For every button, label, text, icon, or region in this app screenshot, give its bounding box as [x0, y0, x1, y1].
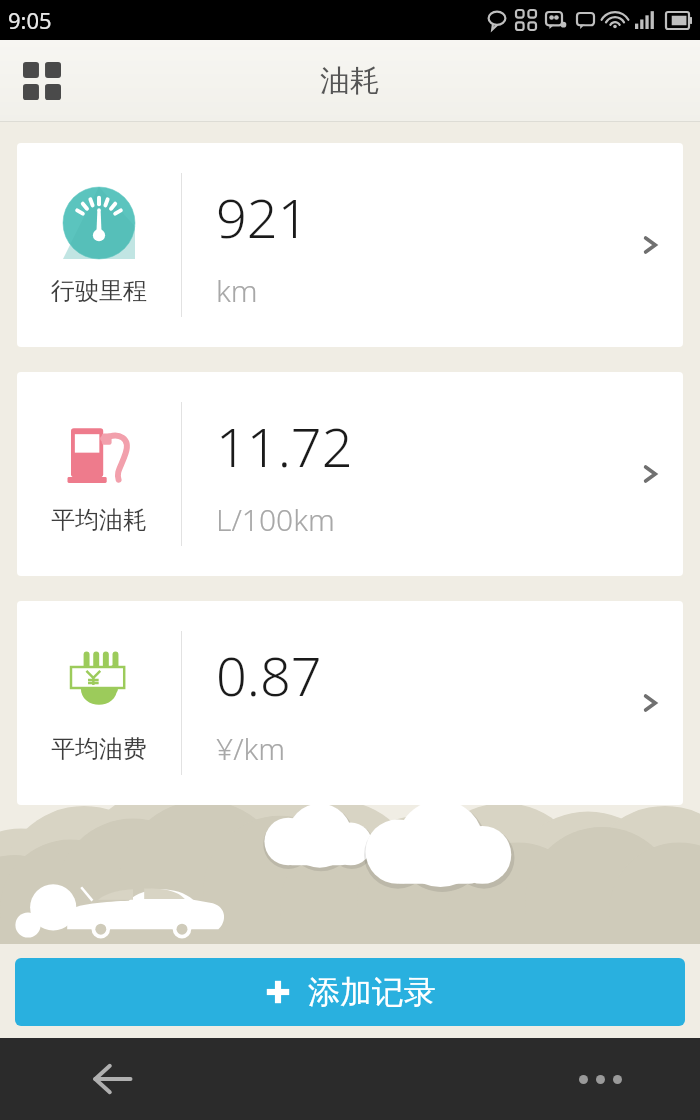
staticText: 9:05 — [8, 5, 52, 35]
button[interactable]: Menu — [14, 53, 70, 109]
staticText: ¥/km — [216, 728, 286, 769]
button[interactable]: 添加记录 — [15, 958, 685, 1026]
staticText: 0.87 — [216, 638, 322, 712]
button[interactable]: 平均油耗 — [17, 372, 683, 576]
button[interactable]: Back — [80, 1047, 144, 1111]
staticText: 平均油耗 — [51, 505, 147, 535]
staticText: 添加记录 — [308, 972, 436, 1012]
button[interactable]: 平均油费 — [17, 601, 683, 805]
button[interactable]: 行驶里程 — [17, 143, 683, 347]
staticText: 油耗 — [320, 62, 380, 100]
button[interactable]: More options — [568, 1047, 632, 1111]
staticText: 行驶里程 — [51, 276, 147, 306]
staticText: 平均油费 — [51, 734, 147, 764]
staticText: 11.72 — [216, 409, 353, 483]
staticText: km — [216, 270, 258, 311]
staticText: 921 — [216, 180, 309, 254]
staticText: L/100km — [216, 499, 335, 540]
